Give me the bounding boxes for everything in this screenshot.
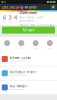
staticText: Your device is well protected. (19, 16, 44, 23)
staticText: Last full scan: 3 hours ago (19, 23, 54, 27)
staticText: 4 (14, 14, 17, 21)
staticText: 3 (8, 14, 11, 21)
button[interactable]: Software update (0, 52, 57, 66)
staticText: Privacy (47, 47, 53, 49)
staticText: LBE Security Master (2, 4, 38, 10)
staticText: Software update (10, 56, 32, 60)
button[interactable]: Notification cleaner (0, 66, 57, 80)
button[interactable]: App manager (0, 80, 57, 94)
staticText: Ads (14, 21, 17, 23)
staticText: App manager (10, 84, 28, 88)
staticText: Clean (19, 47, 23, 49)
button[interactable]: Clean (14, 40, 28, 49)
staticText: Apps (2, 21, 6, 23)
button[interactable]: Settings (51, 5, 55, 9)
staticText: 3 apps can be updated (10, 60, 26, 62)
staticText: Manage installed apps (10, 88, 25, 90)
button[interactable]: Full scan (2, 27, 55, 34)
staticText: Tidy up your notifications (10, 74, 27, 76)
button[interactable]: Scan (0, 40, 14, 49)
staticText: Risks (8, 21, 12, 23)
staticText: Full scan (22, 28, 34, 32)
button[interactable]: Boost (28, 40, 43, 49)
staticText: Boost (34, 47, 38, 49)
staticText: Overview (19, 10, 36, 15)
staticText: Notification cleaner (10, 70, 37, 74)
button[interactable]: Privacy (43, 40, 57, 49)
staticText: Scan (5, 47, 9, 49)
staticText: 6 (3, 14, 6, 21)
